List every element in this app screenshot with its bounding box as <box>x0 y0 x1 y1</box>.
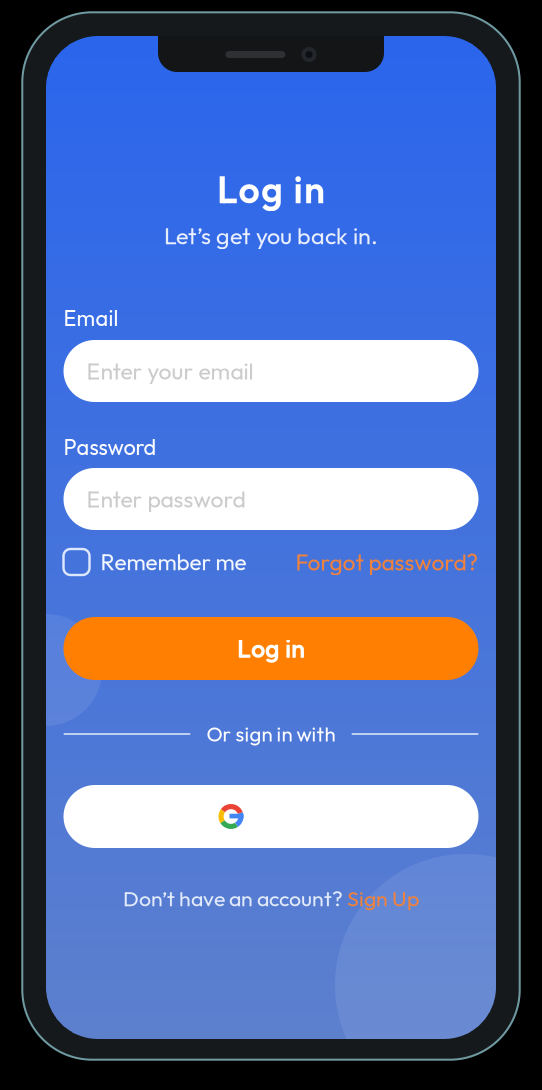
button[interactable]: Enter your email <box>63 340 478 402</box>
staticText: Remember me <box>100 548 246 576</box>
staticText: Don’t have an account? <box>123 885 347 912</box>
button[interactable]: Forgot password? <box>295 547 478 577</box>
staticText: Or sign in with <box>206 721 335 747</box>
staticText: Password <box>63 433 156 461</box>
button[interactable]: Sign in with Google <box>63 785 478 848</box>
button[interactable]: Enter password <box>63 468 478 530</box>
staticText: Let’s get you back in. <box>164 221 378 250</box>
staticText: Enter password <box>86 485 245 513</box>
staticText: Sign Up <box>347 885 419 912</box>
staticText: Forgot password? <box>295 548 478 576</box>
button[interactable]: Sign Up <box>347 885 419 912</box>
staticText: Enter your email <box>86 357 253 385</box>
staticText: Email <box>63 304 118 332</box>
button[interactable]: Log in <box>63 617 478 680</box>
button[interactable]: Remember me <box>63 547 246 577</box>
staticText: Log in <box>217 166 325 213</box>
staticText: Log in <box>237 633 305 664</box>
